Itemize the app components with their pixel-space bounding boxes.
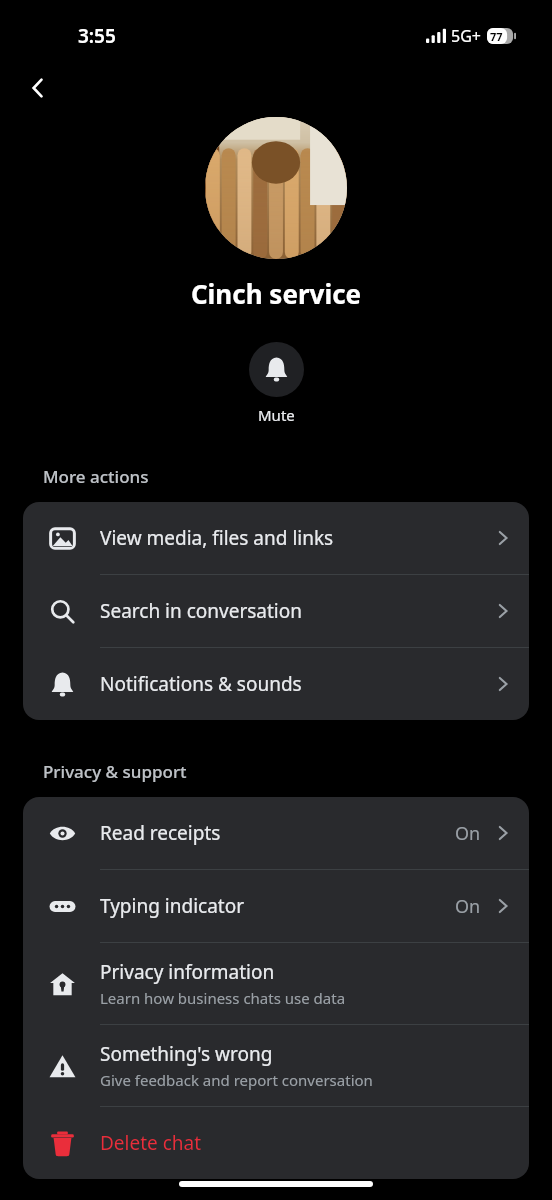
staticText: Give feedback and report conversation — [100, 1070, 373, 1090]
staticText: More actions — [43, 465, 149, 488]
button[interactable]: View media, files and links — [23, 502, 529, 574]
staticText: Something's wrong — [100, 1041, 273, 1067]
button[interactable]: Privacy information — [23, 943, 529, 1024]
staticText: Notifications & sounds — [100, 671, 302, 697]
staticText: Read receipts — [100, 820, 221, 846]
staticText: On — [455, 821, 481, 846]
button[interactable]: Mute — [247, 340, 306, 427]
staticText: 5G+ — [451, 25, 481, 47]
staticText: View media, files and links — [100, 525, 334, 551]
staticText: 3:55 — [78, 23, 116, 49]
staticText: Privacy information — [100, 959, 275, 985]
button[interactable]: Something's wrong — [23, 1025, 529, 1106]
staticText: On — [455, 894, 481, 919]
staticText: Search in conversation — [100, 598, 302, 624]
staticText: 77 — [490, 29, 503, 44]
button[interactable]: Notifications & sounds — [23, 648, 529, 720]
staticText: Delete chat — [100, 1130, 202, 1156]
button[interactable]: Back — [16, 66, 60, 110]
button[interactable]: Search in conversation — [23, 575, 529, 647]
staticText: Cinch service — [0, 276, 552, 311]
button[interactable]: Typing indicator — [23, 870, 529, 942]
button[interactable] — [205, 117, 347, 259]
button[interactable]: Delete chat — [23, 1107, 529, 1179]
button[interactable]: Read receipts — [23, 797, 529, 869]
staticText: Learn how business chats use data — [100, 988, 346, 1008]
staticText: Mute — [258, 405, 295, 425]
staticText: Privacy & support — [43, 760, 187, 783]
staticText: Typing indicator — [100, 893, 245, 919]
